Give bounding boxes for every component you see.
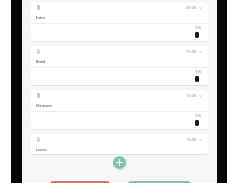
staticText: 09:00 (186, 5, 197, 10)
staticText: Learn (36, 147, 47, 152)
button[interactable]: 16:00 (31, 134, 208, 154)
button[interactable]: Add (113, 156, 126, 169)
staticText: Intro (36, 15, 46, 20)
button[interactable]: 10:00 (31, 46, 208, 85)
staticText: Build (36, 59, 46, 64)
staticText: 13:00 (186, 93, 197, 98)
button[interactable]: 13:00 (31, 90, 208, 129)
staticText: 9:00 (195, 114, 202, 118)
staticText: 9:00 (195, 26, 202, 30)
staticText: 16:00 (186, 137, 197, 142)
staticText: Measure (36, 103, 53, 108)
button[interactable] (128, 181, 191, 183)
button[interactable]: 09:00 (31, 2, 208, 41)
staticText: 9:00 (195, 70, 202, 74)
staticText: 10:00 (186, 49, 197, 54)
button[interactable] (50, 181, 110, 183)
